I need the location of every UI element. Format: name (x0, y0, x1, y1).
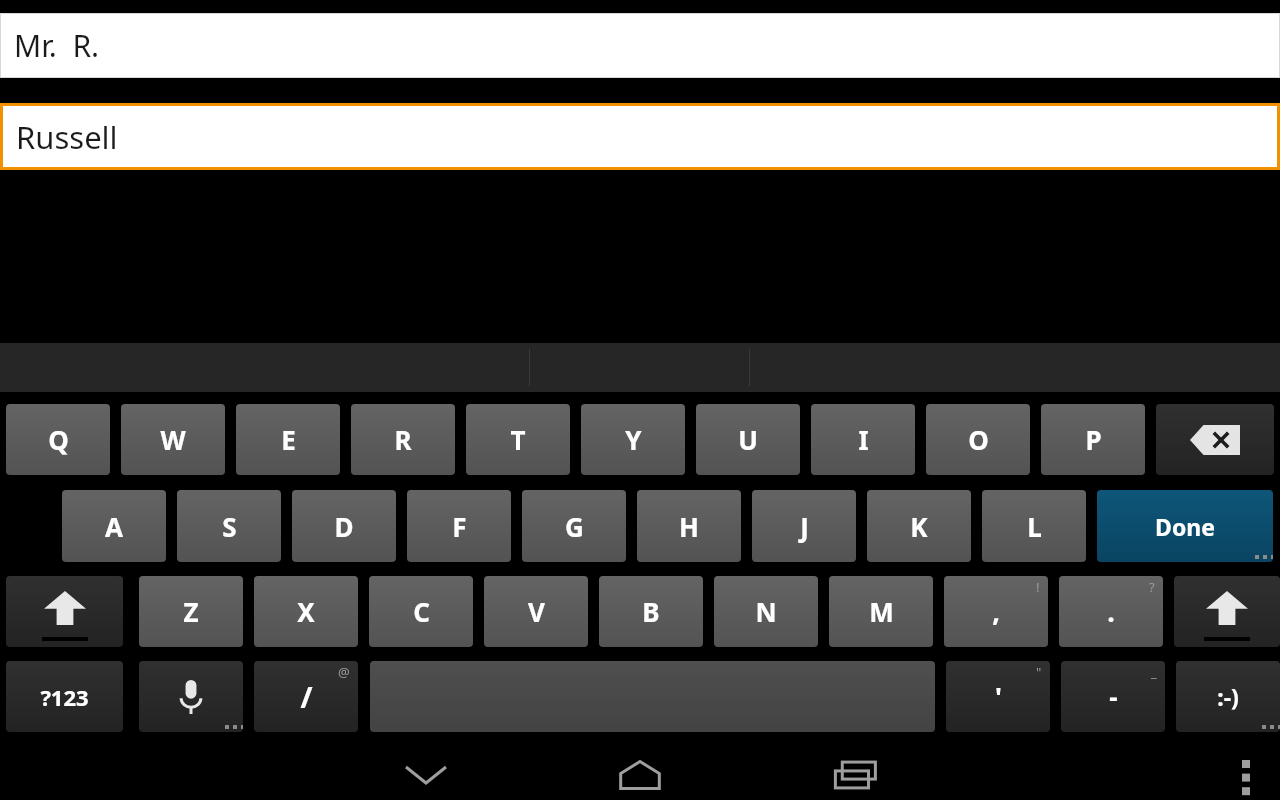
button[interactable]: E (236, 404, 340, 475)
staticText: R (394, 422, 412, 457)
staticText: J (800, 509, 809, 544)
staticText: K (910, 509, 928, 544)
button[interactable]: Shift (1174, 576, 1280, 647)
staticText: T (510, 422, 526, 457)
staticText: ! (1036, 578, 1040, 596)
staticText: U (738, 422, 758, 457)
button[interactable]: F (407, 490, 511, 562)
button[interactable]: Y (581, 404, 685, 475)
button[interactable]: ' (946, 661, 1050, 732)
staticText: V (528, 594, 545, 629)
button[interactable]: X (254, 576, 358, 647)
staticText: Y (625, 422, 642, 457)
button[interactable]: . (1059, 576, 1163, 647)
staticText: Russell (16, 116, 118, 158)
staticText: X (297, 594, 315, 629)
button[interactable]: Home (612, 751, 668, 799)
button[interactable]: Voice input (139, 661, 243, 732)
button[interactable]: , (944, 576, 1048, 647)
button[interactable]: P (1041, 404, 1145, 475)
staticText: Q (48, 422, 69, 457)
staticText: G (565, 509, 584, 544)
staticText: ' (995, 679, 1002, 714)
button[interactable]: :-) (1176, 661, 1280, 732)
staticText: N (755, 594, 777, 629)
staticText: D (334, 509, 354, 544)
staticText: E (281, 422, 296, 457)
button[interactable]: J (752, 490, 856, 562)
button[interactable]: C (369, 576, 473, 647)
staticText: @ (338, 663, 350, 681)
button[interactable]: D (292, 490, 396, 562)
button[interactable]: H (637, 490, 741, 562)
button[interactable]: Z (139, 576, 243, 647)
button[interactable]: Recent apps (829, 751, 885, 799)
button[interactable]: I (811, 404, 915, 475)
staticText: ?123 (40, 682, 89, 712)
staticText: W (160, 422, 186, 457)
button[interactable]: T (466, 404, 570, 475)
staticText: , (992, 593, 1000, 630)
staticText: L (1027, 509, 1042, 544)
button[interactable]: G (522, 490, 626, 562)
button[interactable]: K (867, 490, 971, 562)
staticText: - (1109, 679, 1118, 714)
staticText: C (413, 594, 430, 629)
staticText: F (452, 509, 467, 544)
staticText: P (1085, 422, 1102, 457)
button[interactable]: N (714, 576, 818, 647)
button[interactable]: B (599, 576, 703, 647)
staticText: _ (1151, 663, 1157, 681)
staticText: H (679, 509, 699, 544)
button[interactable]: ?123 (6, 661, 123, 732)
button[interactable]: Mr. R. (0, 13, 1280, 78)
button[interactable]: Shift (6, 576, 123, 647)
button[interactable]: Hide keyboard (398, 751, 454, 799)
staticText: Z (183, 594, 199, 629)
staticText: M (869, 594, 894, 629)
staticText: Mr. R. (14, 25, 100, 66)
button[interactable]: - (1061, 661, 1165, 732)
button[interactable]: Space (370, 661, 935, 732)
staticText: O (968, 422, 989, 457)
button[interactable]: Russell (0, 103, 1280, 170)
staticText: B (642, 594, 660, 629)
staticText: I (858, 422, 869, 457)
button[interactable]: U (696, 404, 800, 475)
button[interactable]: / (254, 661, 358, 732)
button[interactable]: A (62, 490, 166, 562)
button[interactable]: Q (6, 404, 110, 475)
button[interactable]: L (982, 490, 1086, 562)
staticText: / (300, 677, 313, 716)
staticText: :-) (1217, 681, 1239, 712)
staticText: . (1107, 593, 1115, 630)
button[interactable]: M (829, 576, 933, 647)
button[interactable]: O (926, 404, 1030, 475)
button[interactable]: More options (1222, 751, 1270, 799)
staticText: A (105, 509, 123, 544)
button[interactable]: S (177, 490, 281, 562)
button[interactable]: W (121, 404, 225, 475)
staticText: S (222, 509, 237, 544)
staticText: " (1036, 663, 1042, 681)
staticText: ? (1149, 578, 1155, 596)
button[interactable]: Backspace (1156, 404, 1274, 475)
button[interactable]: R (351, 404, 455, 475)
button[interactable]: Done (1097, 490, 1273, 562)
staticText: Done (1155, 511, 1215, 542)
button[interactable]: V (484, 576, 588, 647)
